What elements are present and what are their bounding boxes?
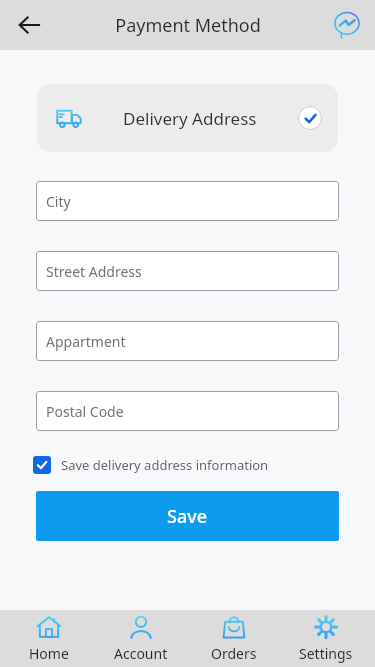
button[interactable]: Account <box>98 610 184 667</box>
staticText: Appartment <box>46 332 126 351</box>
button[interactable]: Orders <box>191 610 277 667</box>
staticText: Settings <box>299 644 353 663</box>
button[interactable]: Postal Code <box>36 391 339 431</box>
button[interactable]: Delivery Address <box>37 84 338 152</box>
staticText: Orders <box>211 644 257 663</box>
staticText: Postal Code <box>46 402 124 421</box>
button[interactable]: Messenger <box>327 5 367 45</box>
button[interactable]: Save delivery address information <box>33 452 269 478</box>
staticText: Account <box>114 644 168 663</box>
button[interactable]: Appartment <box>36 321 339 361</box>
staticText: Home <box>29 644 69 663</box>
button[interactable]: Street Address <box>36 251 339 291</box>
staticText: Save delivery address information <box>61 456 269 474</box>
staticText: Street Address <box>46 262 142 281</box>
staticText: City <box>46 192 71 211</box>
button[interactable]: Back <box>8 3 52 47</box>
staticText: Delivery Address <box>123 107 257 130</box>
staticText: Save <box>167 504 208 529</box>
button[interactable]: Settings <box>283 610 369 667</box>
staticText: Payment Method <box>115 13 261 38</box>
button[interactable]: Save <box>36 491 339 541</box>
button[interactable]: Home <box>6 610 92 667</box>
button[interactable]: City <box>36 181 339 221</box>
